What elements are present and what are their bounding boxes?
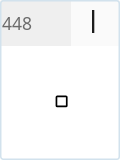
- button[interactable]: Text field: [71, 0, 120, 46]
- staticText: 448: [2, 11, 33, 35]
- button[interactable]: Check box: [52, 91, 70, 109]
- button[interactable]: 448: [0, 0, 71, 46]
